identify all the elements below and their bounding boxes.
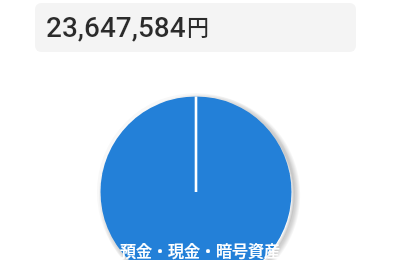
button[interactable]: Asset allocation pie chart — [96, 92, 296, 260]
staticText: 預金・現金・暗号資産 — [0, 238, 400, 260]
staticText: 円 — [187, 9, 210, 41]
button[interactable]: 23,647,584 — [35, 3, 356, 52]
staticText: 23,647,584 — [46, 11, 186, 44]
